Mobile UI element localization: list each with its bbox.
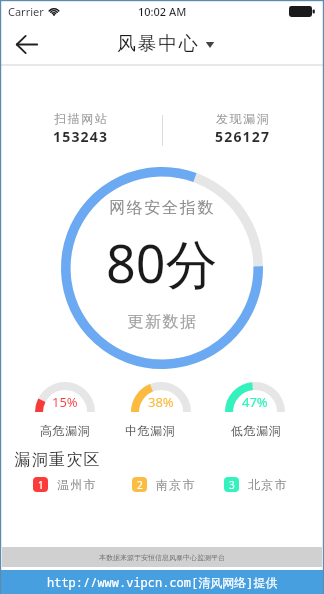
button[interactable]: 15% [35,382,95,412]
staticText: 47% [242,393,268,411]
staticText: 网络安全指数 [109,198,216,218]
staticText: 2 [137,478,143,492]
button[interactable]: 47% [225,382,285,412]
staticText: http://www.vipcn.com[清风网络]提供 [47,574,278,590]
staticText: 漏洞重灾区 [14,450,100,470]
staticText: 发现漏洞 [216,111,271,126]
button[interactable]: Back [8,25,46,63]
staticText: 526127 [215,127,271,145]
staticText: 80分 [106,227,218,298]
staticText: 本数据来源于安恒信息风暴中心监测平台 [99,553,225,562]
staticText: 风暴中心 [117,32,200,56]
staticText: 1 [38,478,44,492]
staticText: 153243 [53,127,109,145]
button[interactable]: 3 [224,477,288,492]
staticText: Carrier [8,4,44,19]
staticText: 南京市 [156,477,196,492]
button[interactable]: 发现漏洞 [162,111,324,145]
button[interactable]: 2 [132,477,196,492]
staticText: 15% [52,393,78,411]
staticText: 北京市 [248,477,288,492]
button[interactable]: 更新数据 [127,312,198,332]
staticText: 3 [229,478,235,492]
button[interactable]: 扫描网站 [0,111,162,145]
staticText: 温州市 [57,477,97,492]
staticText: 中危漏洞 [125,423,176,438]
button[interactable]: 风暴中心 [117,32,215,56]
staticText: 低危漏洞 [231,423,282,438]
staticText: 10:02 AM [138,4,187,19]
staticText: 扫描网站 [54,111,109,126]
button[interactable]: 1 [33,477,97,492]
staticText: 高危漏洞 [40,423,91,438]
staticText: 38% [148,393,174,411]
button[interactable]: 38% [131,382,191,412]
